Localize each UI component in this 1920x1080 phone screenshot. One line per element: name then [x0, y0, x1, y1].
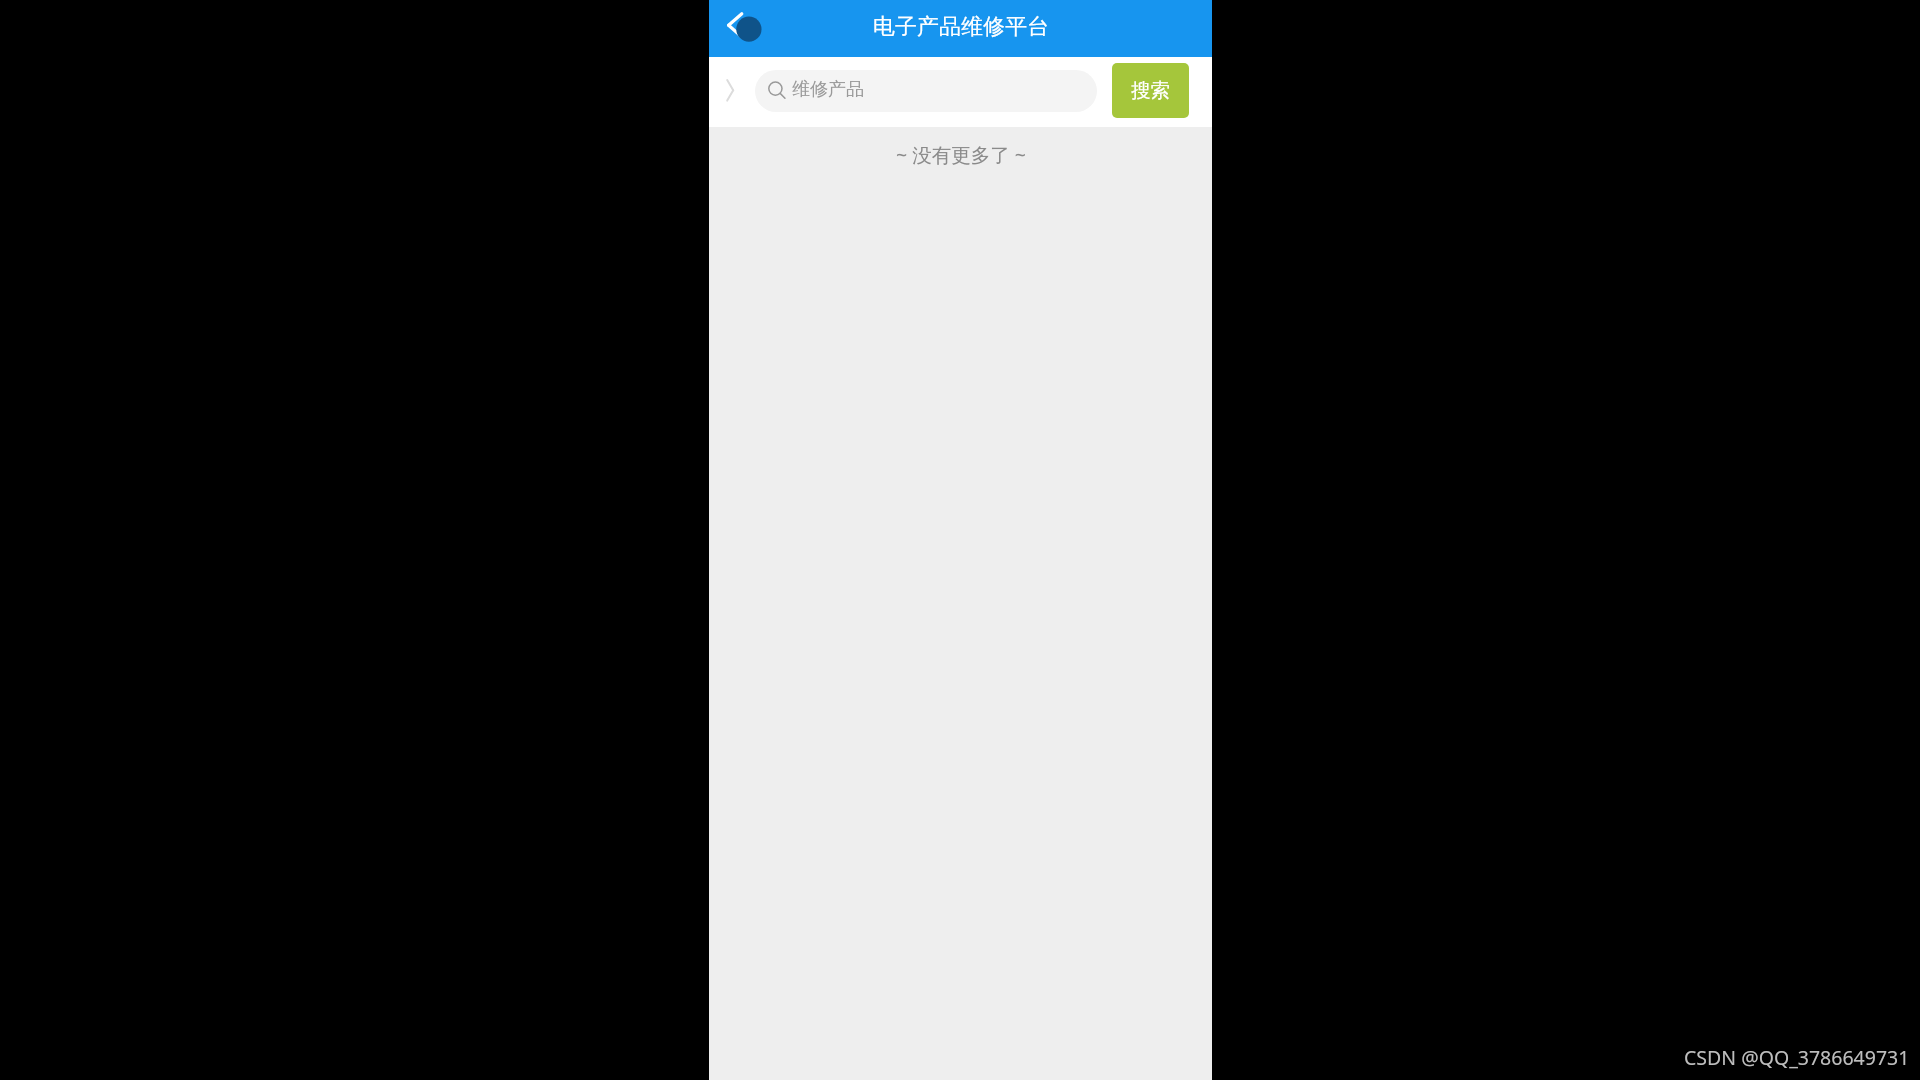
staticText: CSDN @QQ_3786649731: [1684, 1044, 1910, 1071]
staticText: ~ 没有更多了 ~: [896, 141, 1026, 168]
staticText: 搜索: [1131, 78, 1170, 103]
staticText: 电子产品维修平台: [873, 13, 1049, 41]
staticText: 维修产品: [792, 78, 864, 101]
button[interactable]: 搜索: [1112, 63, 1189, 118]
button[interactable]: Back: [709, 0, 766, 57]
button[interactable]: Expand categories: [717, 67, 751, 117]
button[interactable]: 维修产品: [755, 70, 1097, 112]
